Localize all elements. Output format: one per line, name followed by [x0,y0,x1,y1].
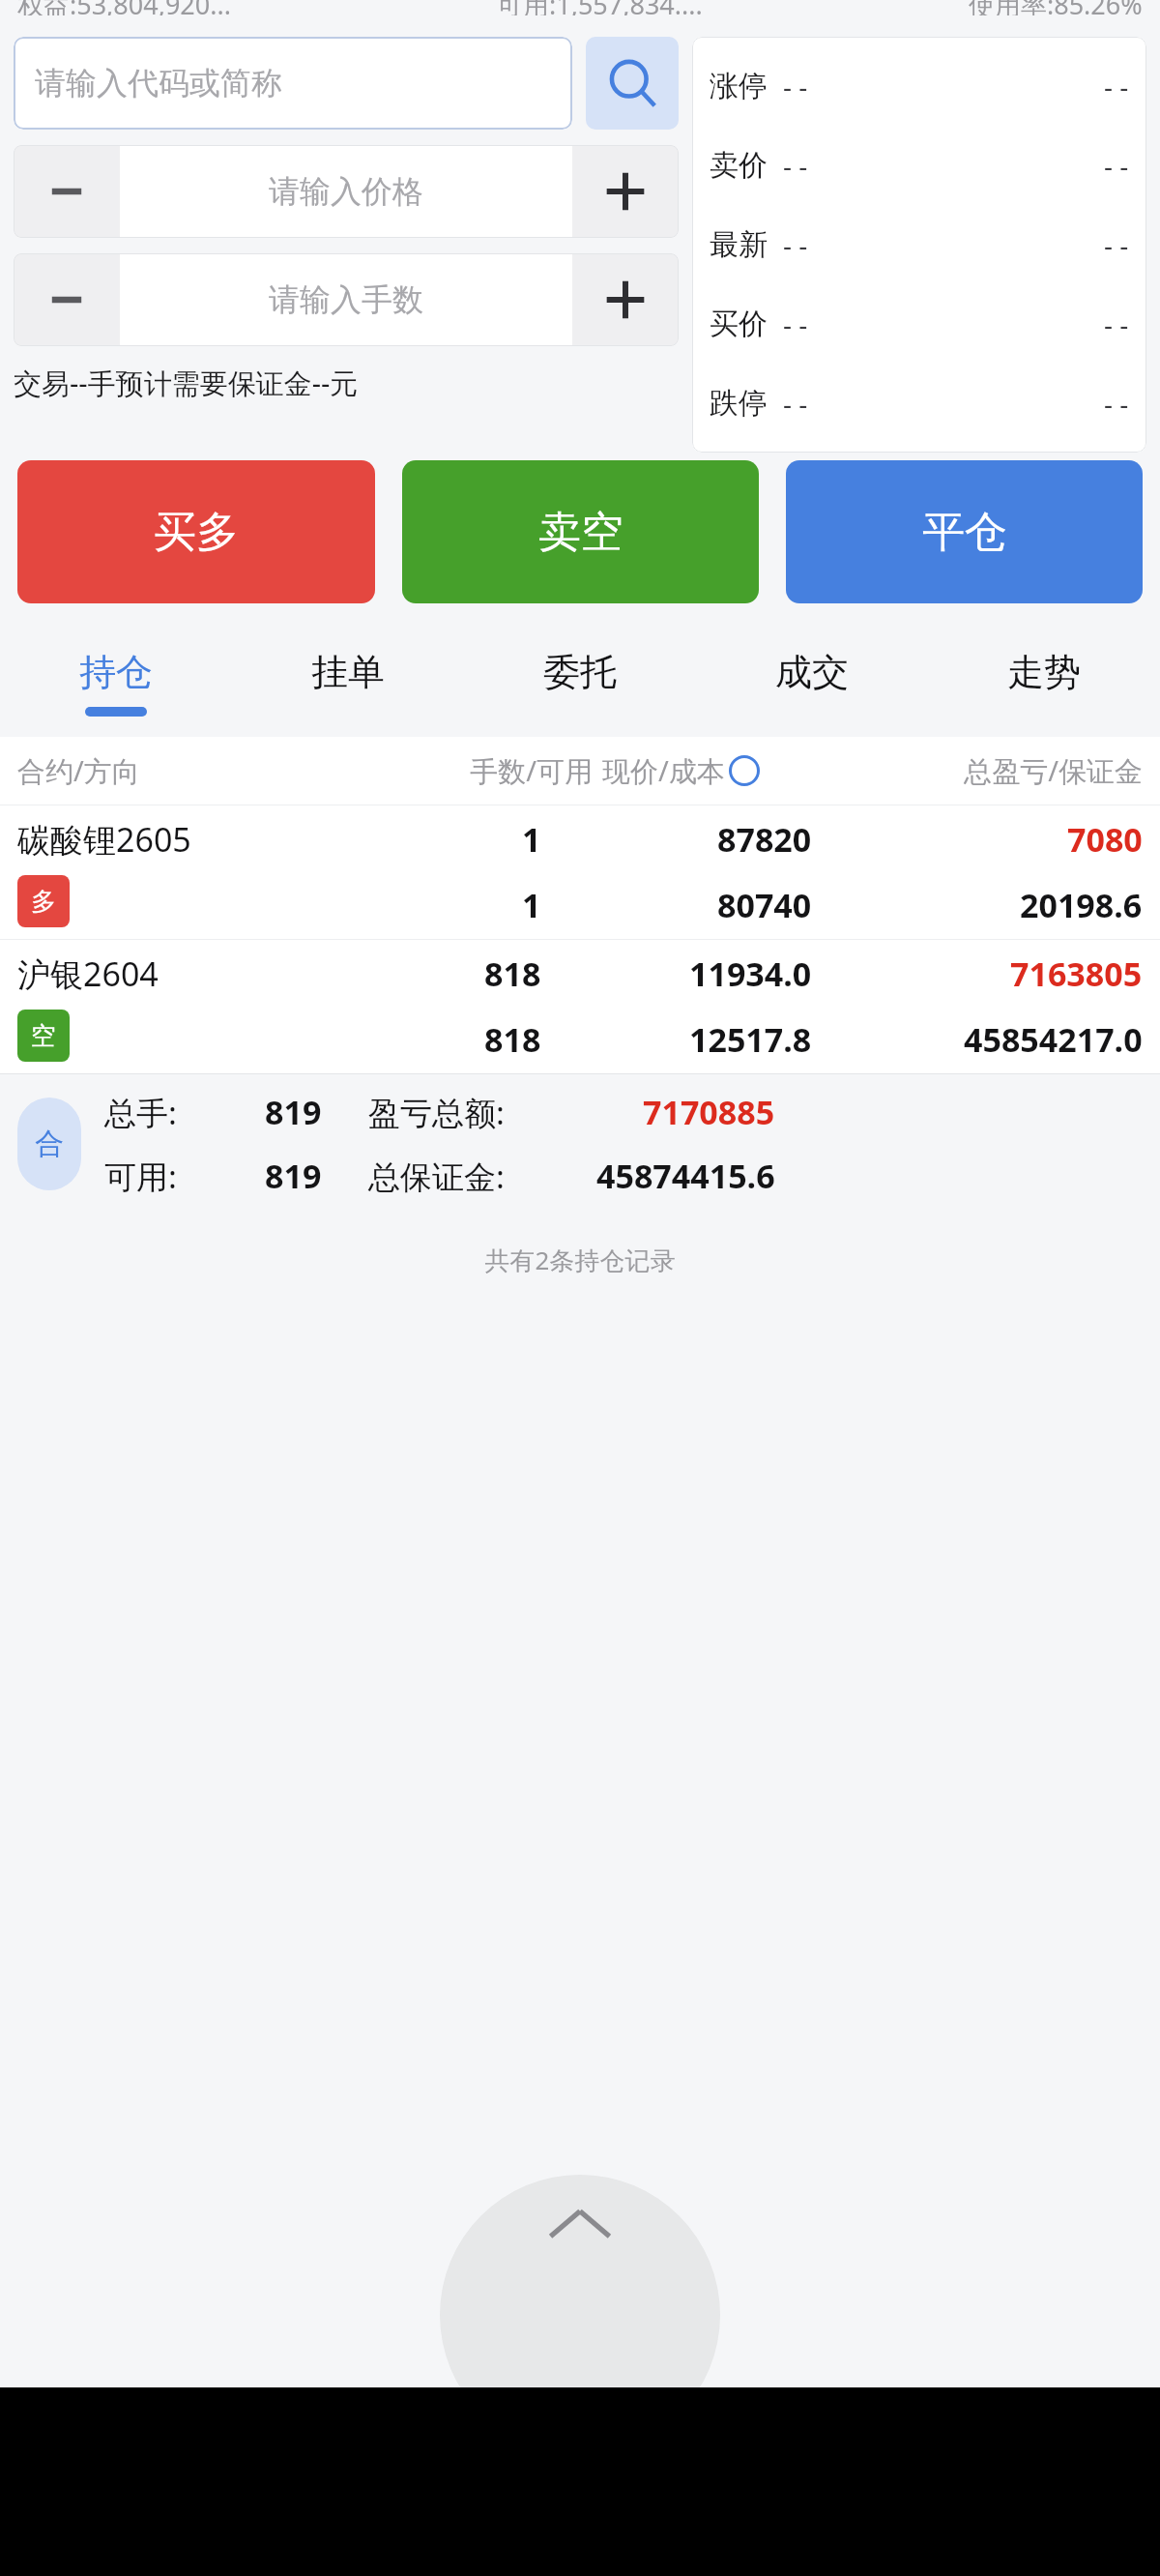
staticText: - - [783,147,808,184]
staticText: 现价/成本 [602,751,725,790]
staticText: 共有2条持仓记录 [0,1243,1160,1277]
staticText: 1 [522,883,541,927]
staticText: 最新 [710,226,768,263]
staticText: 多 [31,886,56,918]
staticText: - - [783,385,808,422]
staticText: - - [783,68,808,104]
button[interactable]: Increase [572,253,679,346]
staticText: 818 [484,951,541,996]
staticText: 请输入价格 [269,172,423,211]
button[interactable]: Increase [572,145,679,238]
staticText: - - [783,226,808,263]
staticText: 使用率:85.26% [969,0,1143,15]
button[interactable]: Search [586,37,679,130]
button[interactable]: Expand [440,2175,720,2455]
staticText: 碳酸锂2605 [17,817,191,862]
staticText: 请输入代码或简称 [35,64,282,102]
staticText: 可用:1,557,834.... [497,0,703,15]
button[interactable]: 涨停 [692,37,1146,453]
staticText: 7170885 [643,1090,775,1134]
staticText: 818 [484,1017,541,1062]
staticText: 沪银2604 [17,951,159,996]
button[interactable]: 卖空 [402,460,759,603]
staticText: 权益:53,804,920... [17,0,231,15]
button[interactable]: 请输入价格 [120,145,572,238]
button[interactable]: Decrease [14,253,120,346]
staticText: 7163805 [1010,951,1143,996]
staticText: 819 [265,1154,322,1198]
staticText: 手数/可用 [390,751,593,790]
staticText: 持仓 [79,649,153,695]
staticText: - - [1104,147,1129,184]
button[interactable]: 成交 [696,629,928,737]
button[interactable]: 挂单 [232,629,464,737]
staticText: 45874415.6 [596,1154,775,1198]
button[interactable]: 平仓 [786,460,1143,603]
staticText: 12517.8 [689,1017,812,1062]
staticText: 7080 [1067,817,1143,862]
button[interactable]: 买多 [17,460,375,603]
button[interactable]: Decrease [14,145,120,238]
staticText: 平仓 [922,506,1007,559]
staticText: 卖价 [710,147,768,184]
button[interactable]: 请输入手数 [120,253,572,346]
staticText: 委托 [543,649,617,695]
staticText: - - [783,306,808,342]
staticText: - - [1104,385,1129,422]
staticText: 走势 [1007,649,1081,695]
button[interactable]: 沪银2604 [0,939,1160,1073]
staticText: 1 [522,817,541,862]
staticText: 跌停 [710,385,768,422]
button[interactable]: 请输入代码或简称 [14,37,572,130]
staticText: 总手: [104,1091,177,1134]
staticText: 20198.6 [1020,883,1143,927]
staticText: - - [1104,68,1129,104]
staticText: 可用: [104,1155,177,1198]
staticText: 总盈亏/保证金 [769,751,1143,790]
staticText: 总保证金: [368,1155,505,1198]
staticText: 涨停 [710,68,768,104]
button[interactable]: 委托 [464,629,696,737]
staticText: - - [1104,306,1129,342]
staticText: 买多 [154,506,239,559]
staticText: 请输入手数 [269,280,423,319]
staticText: 交易--手预计需要保证金--元 [14,364,359,402]
button[interactable]: 碳酸锂2605 [0,805,1160,939]
staticText: 合约/方向 [17,751,390,790]
staticText: 11934.0 [689,951,812,996]
staticText: 空 [31,1020,56,1052]
staticText: - - [1104,226,1129,263]
staticText: 买价 [710,306,768,342]
staticText: 87820 [717,817,812,862]
button[interactable]: 走势 [928,629,1160,737]
staticText: 合 [35,1126,64,1162]
staticText: 成交 [775,649,849,695]
staticText: 盈亏总额: [368,1091,505,1134]
staticText: 挂单 [311,649,385,695]
button[interactable]: 持仓 [0,629,232,737]
staticText: 卖空 [538,506,623,559]
staticText: 45854217.0 [964,1017,1143,1062]
staticText: 80740 [717,883,812,927]
staticText: 819 [265,1090,322,1134]
